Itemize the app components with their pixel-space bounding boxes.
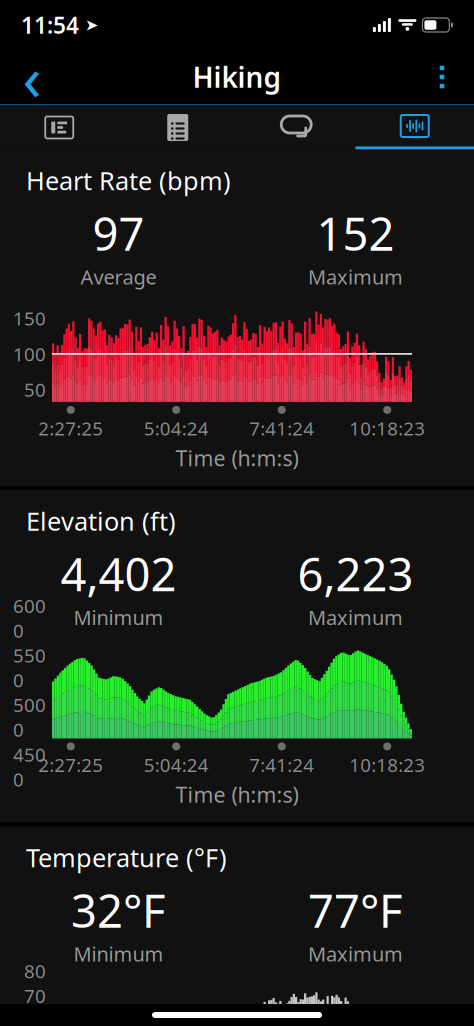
staticText: Maximum	[308, 940, 403, 967]
staticText: 5:04:24	[144, 752, 209, 777]
staticText: 7:41:24	[249, 416, 314, 441]
staticText: 2:27:25	[38, 752, 103, 777]
staticText: Average	[80, 263, 156, 290]
staticText: Maximum	[308, 263, 403, 290]
button[interactable]: Back	[8, 52, 56, 102]
staticText: 7:41:24	[249, 752, 314, 777]
staticText: Minimum	[73, 604, 163, 630]
button[interactable]: Details	[118, 105, 237, 149]
button[interactable]: Map	[0, 105, 118, 149]
staticText: Time (h:m:s)	[175, 444, 298, 472]
staticText: 2:27:25	[38, 416, 103, 441]
staticText: Minimum	[73, 940, 163, 967]
staticText: 10:18:23	[349, 752, 425, 777]
staticText: Temperature (°F)	[26, 840, 227, 874]
staticText: 5000	[13, 692, 46, 742]
staticText: Time (h:m:s)	[175, 780, 298, 808]
staticText: 77°F	[308, 880, 403, 940]
staticText: 4,402	[60, 544, 176, 604]
staticText: 6,223	[297, 544, 413, 604]
button[interactable]: Graphs	[355, 105, 474, 149]
staticText: 80	[24, 959, 46, 983]
staticText: Maximum	[308, 604, 403, 630]
staticText: 97	[92, 203, 144, 263]
staticText: 5500	[13, 643, 46, 692]
staticText: Elevation (ft)	[26, 504, 176, 538]
staticText: ➤	[79, 16, 98, 34]
staticText: 4500	[13, 742, 46, 792]
staticText: 10:18:23	[349, 416, 425, 441]
staticText: 50	[24, 377, 46, 402]
staticText: 150	[13, 306, 46, 331]
staticText: 152	[316, 203, 394, 263]
staticText: 32°F	[71, 880, 166, 940]
staticText: 5:04:24	[144, 416, 209, 441]
staticText: Hiking	[192, 58, 281, 96]
staticText: 70	[24, 983, 46, 1008]
staticText: Heart Rate (bpm)	[26, 163, 231, 197]
staticText: 6000	[13, 593, 46, 643]
button[interactable]: Laps	[237, 105, 355, 149]
staticText: ‹	[22, 36, 41, 118]
staticText: 11:54	[21, 10, 79, 40]
button[interactable]: More options	[418, 52, 466, 102]
staticText: 100	[13, 341, 46, 366]
